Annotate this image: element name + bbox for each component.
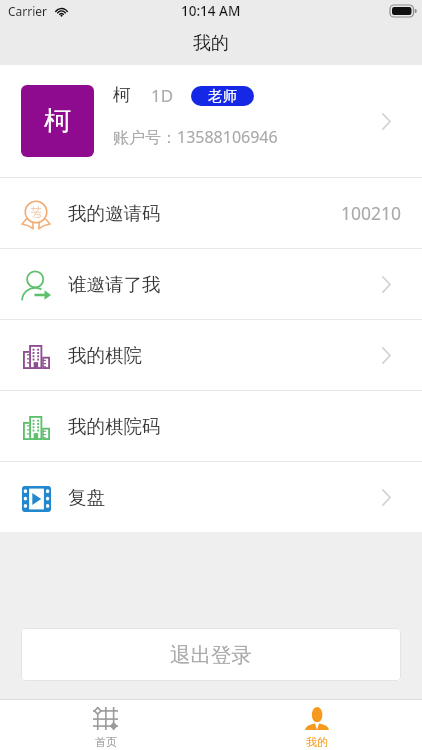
staticText: 我的 xyxy=(193,32,229,55)
staticText: 谁邀请了我 xyxy=(68,273,161,296)
staticText: 我的邀请码 xyxy=(68,202,161,225)
button[interactable]: 我的邀请码 xyxy=(0,178,422,248)
staticText: 首页 xyxy=(95,735,117,749)
button[interactable]: 柯 xyxy=(0,65,422,177)
staticText: 100210 xyxy=(341,201,402,225)
button[interactable]: 复盘 xyxy=(0,462,422,532)
staticText: 10:14 AM xyxy=(181,2,241,20)
staticText: 柯 xyxy=(44,104,71,138)
staticText: Carrier xyxy=(8,3,48,19)
button[interactable]: 我的棋院码 xyxy=(0,391,422,461)
staticText: 柯 xyxy=(113,84,131,107)
staticText: 复盘 xyxy=(68,486,105,509)
button[interactable]: 我的棋院 xyxy=(0,320,422,390)
staticText: 我的棋院 xyxy=(68,344,142,367)
button[interactable]: Profile tab xyxy=(211,700,422,750)
button[interactable]: Home tab xyxy=(0,700,211,750)
button[interactable]: 退出登录 xyxy=(21,628,401,681)
staticText: 退出登录 xyxy=(170,642,252,668)
staticText: 老师 xyxy=(208,87,237,105)
staticText: 1D xyxy=(151,84,174,107)
staticText: 账户号：13588106946 xyxy=(113,126,278,148)
staticText: 我的 xyxy=(306,735,328,749)
staticText: 我的棋院码 xyxy=(68,415,161,438)
button[interactable]: 谁邀请了我 xyxy=(0,249,422,319)
